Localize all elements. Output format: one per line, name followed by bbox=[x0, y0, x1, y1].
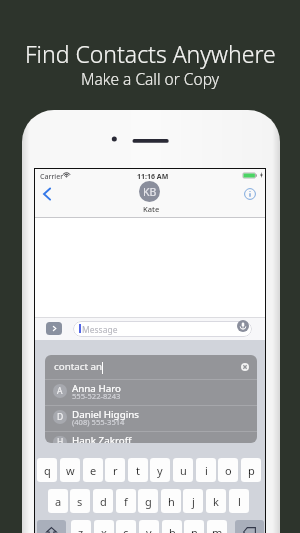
staticText: i bbox=[205, 463, 208, 478]
staticText: 11:16 AM bbox=[137, 172, 169, 182]
button[interactable]: Back bbox=[39, 183, 57, 213]
button[interactable]: x bbox=[94, 520, 114, 533]
button[interactable]: n bbox=[184, 520, 204, 533]
staticText: v bbox=[146, 525, 152, 533]
staticText: Carrier bbox=[40, 172, 64, 182]
staticText: t bbox=[136, 463, 140, 478]
staticText: l bbox=[238, 494, 241, 509]
button[interactable]: f bbox=[116, 489, 136, 513]
staticText: c bbox=[123, 525, 129, 533]
button[interactable]: e bbox=[83, 458, 103, 482]
staticText: z bbox=[78, 525, 84, 533]
staticText: g bbox=[145, 494, 152, 509]
staticText: x bbox=[101, 525, 107, 533]
staticText: f bbox=[124, 494, 128, 509]
staticText: D bbox=[57, 411, 64, 423]
staticText: Daniel Higgins bbox=[72, 408, 139, 421]
button[interactable]: o bbox=[218, 458, 238, 482]
staticText: e bbox=[90, 463, 97, 478]
button[interactable]: w bbox=[60, 458, 80, 482]
staticText: n bbox=[191, 525, 198, 533]
button[interactable]: Backspace bbox=[235, 520, 264, 533]
button[interactable]: Message bbox=[73, 321, 252, 337]
button[interactable]: D bbox=[45, 405, 257, 431]
button[interactable]: t bbox=[128, 458, 148, 482]
staticText: a bbox=[55, 494, 62, 509]
button[interactable]: v bbox=[139, 520, 159, 533]
button[interactable]: b bbox=[162, 520, 182, 533]
staticText: y bbox=[157, 463, 163, 478]
button[interactable]: Contact Kate bbox=[139, 181, 160, 202]
staticText: (408) 555-3514 bbox=[72, 417, 125, 427]
button[interactable]: q bbox=[37, 458, 57, 482]
button[interactable]: A bbox=[45, 379, 257, 405]
staticText: contact an bbox=[54, 360, 103, 373]
staticText: p bbox=[248, 463, 255, 478]
button[interactable]: c bbox=[116, 520, 136, 533]
button[interactable]: k bbox=[206, 489, 226, 513]
button[interactable]: y bbox=[150, 458, 170, 482]
staticText: s bbox=[77, 494, 83, 509]
button[interactable]: z bbox=[71, 520, 91, 533]
staticText: Find Contacts Anywhere bbox=[25, 38, 276, 69]
button[interactable]: g bbox=[138, 489, 158, 513]
staticText: h bbox=[168, 494, 175, 509]
staticText: d bbox=[100, 494, 107, 509]
button[interactable]: m bbox=[207, 520, 227, 533]
button[interactable]: l bbox=[229, 489, 249, 513]
staticText: o bbox=[225, 463, 232, 478]
button[interactable]: a bbox=[48, 489, 68, 513]
button[interactable]: j bbox=[183, 489, 203, 513]
staticText: KB bbox=[143, 185, 157, 199]
staticText: q bbox=[44, 463, 51, 478]
staticText: A bbox=[57, 385, 63, 397]
staticText: u bbox=[180, 463, 187, 478]
button[interactable]: r bbox=[105, 458, 125, 482]
staticText: Make a Call or Copy bbox=[81, 68, 219, 89]
staticText: w bbox=[66, 463, 75, 478]
button[interactable]: s bbox=[70, 489, 90, 513]
button[interactable]: Shift bbox=[37, 520, 66, 533]
staticText: Hank Zakroff bbox=[72, 434, 132, 443]
staticText: Message bbox=[82, 324, 118, 336]
button[interactable]: p bbox=[241, 458, 261, 482]
button[interactable]: H bbox=[45, 431, 257, 443]
button[interactable]: i bbox=[196, 458, 216, 482]
button[interactable]: d bbox=[93, 489, 113, 513]
button[interactable]: Voice message bbox=[237, 320, 249, 332]
staticText: j bbox=[192, 494, 195, 509]
staticText: r bbox=[113, 463, 118, 478]
staticText: 555-522-8243 bbox=[72, 391, 121, 401]
staticText: k bbox=[213, 494, 219, 509]
button[interactable]: u bbox=[173, 458, 193, 482]
staticText: b bbox=[169, 525, 176, 533]
button[interactable]: Clear text bbox=[241, 363, 249, 371]
button[interactable]: h bbox=[161, 489, 181, 513]
button[interactable]: Send bbox=[46, 322, 62, 335]
staticText: Kate bbox=[143, 204, 160, 214]
button[interactable]: Contact info bbox=[241, 185, 259, 203]
staticText: Anna Haro bbox=[72, 382, 121, 395]
staticText: m bbox=[212, 525, 223, 533]
staticText: H bbox=[57, 436, 64, 443]
